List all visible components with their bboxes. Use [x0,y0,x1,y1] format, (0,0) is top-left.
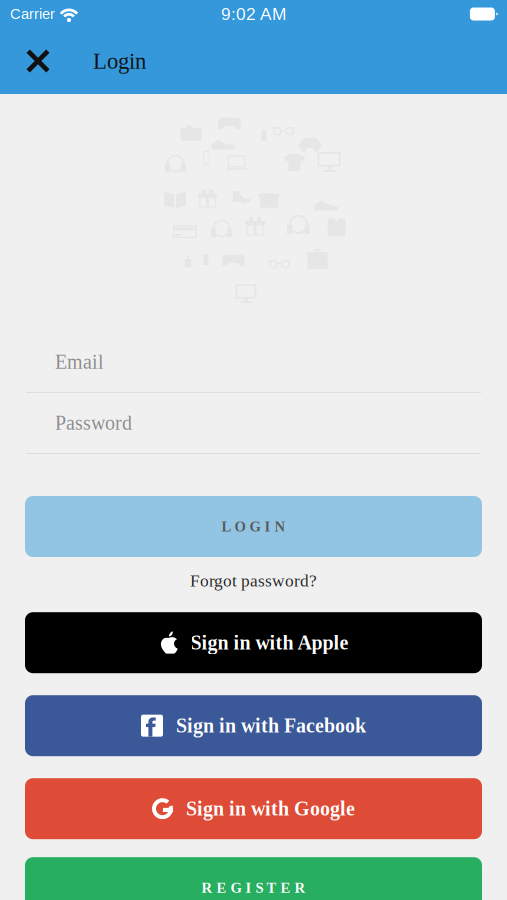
staticText: Carrier [10,6,55,22]
button[interactable]: L O G I N [25,496,482,557]
button[interactable]: Close [18,33,58,89]
staticText: Forgot password? [190,571,317,590]
staticText: Login [93,48,146,73]
staticText: Password [55,412,132,434]
staticText: Sign in with Apple [190,632,348,654]
button[interactable]: Sign in with Apple [25,612,482,673]
button[interactable]: Forgot password? [178,563,329,598]
staticText: Email [55,351,104,373]
staticText: 9:02 AM [221,4,286,24]
button[interactable]: R E G I S T E R [25,857,482,900]
staticText: Sign in with Facebook [176,715,366,737]
staticText: Sign in with Google [186,798,355,820]
button[interactable]: Sign in with Google [25,778,482,839]
staticText: L O G I N [221,518,285,535]
button[interactable]: Sign in with Facebook [25,695,482,756]
staticText: R E G I S T E R [201,880,305,896]
